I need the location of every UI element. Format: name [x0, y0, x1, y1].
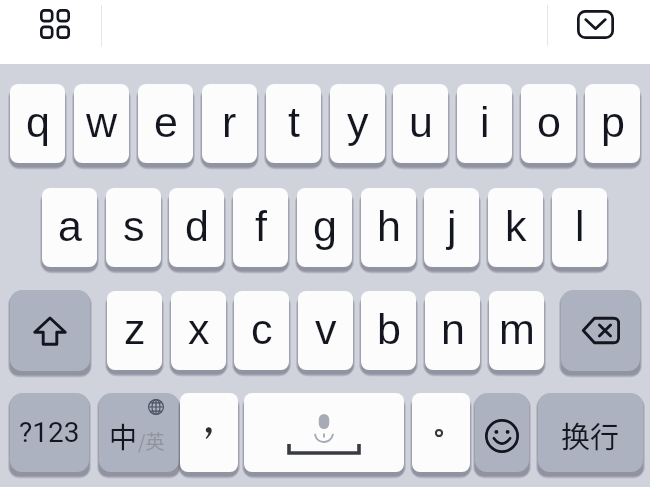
- staticText: q: [26, 98, 50, 146]
- staticText: o: [537, 98, 561, 146]
- button[interactable]: Shift: [10, 290, 90, 371]
- button[interactable]: Emoji: [475, 393, 529, 472]
- staticText: w: [86, 98, 118, 146]
- button[interactable]: q: [10, 84, 65, 163]
- staticText: v: [315, 305, 337, 353]
- button[interactable]: n: [425, 291, 480, 370]
- button[interactable]: Hide keyboard: [566, 0, 624, 48]
- button[interactable]: g: [297, 188, 352, 267]
- button[interactable]: y: [330, 84, 385, 163]
- button[interactable]: a: [42, 188, 97, 267]
- staticText: j: [447, 202, 457, 250]
- button[interactable]: Backspace: [561, 290, 640, 371]
- staticText: b: [377, 305, 401, 353]
- button[interactable]: p: [585, 84, 640, 163]
- button[interactable]: Comma: [180, 393, 238, 472]
- staticText: c: [251, 305, 273, 353]
- button[interactable]: r: [202, 84, 257, 163]
- button[interactable]: Keyboard apps: [22, 0, 88, 48]
- staticText: k: [505, 202, 527, 250]
- button[interactable]: u: [393, 84, 448, 163]
- staticText: u: [409, 98, 433, 146]
- staticText: h: [377, 202, 401, 250]
- button[interactable]: b: [361, 291, 416, 370]
- staticText: x: [188, 305, 210, 353]
- button[interactable]: s: [106, 188, 161, 267]
- button[interactable]: e: [138, 84, 193, 163]
- button[interactable]: Switch language: [99, 393, 179, 472]
- button[interactable]: t: [266, 84, 321, 163]
- staticText: r: [222, 98, 237, 146]
- staticText: y: [347, 98, 369, 146]
- button[interactable]: x: [171, 291, 226, 370]
- button[interactable]: k: [488, 188, 543, 267]
- button[interactable]: Space: [244, 393, 404, 472]
- staticText: t: [288, 98, 300, 146]
- staticText: 换行: [561, 414, 620, 456]
- button[interactable]: o: [521, 84, 576, 163]
- staticText: z: [124, 305, 146, 353]
- staticText: l: [575, 202, 585, 250]
- button[interactable]: Period: [412, 393, 470, 472]
- button[interactable]: w: [74, 84, 129, 163]
- staticText: m: [499, 305, 535, 353]
- staticText: s: [123, 202, 145, 250]
- button[interactable]: Symbols: [10, 393, 89, 472]
- staticText: ?123: [19, 416, 80, 449]
- button[interactable]: i: [457, 84, 512, 163]
- staticText: i: [480, 98, 490, 146]
- button[interactable]: v: [298, 291, 353, 370]
- staticText: p: [601, 98, 625, 146]
- staticText: f: [255, 202, 267, 250]
- button[interactable]: l: [552, 188, 607, 267]
- staticText: e: [154, 98, 178, 146]
- button[interactable]: c: [234, 291, 289, 370]
- staticText: g: [313, 202, 337, 250]
- staticText: 中: [109, 416, 138, 457]
- button[interactable]: h: [361, 188, 416, 267]
- staticText: /英: [138, 427, 165, 455]
- button[interactable]: f: [233, 188, 288, 267]
- button[interactable]: Enter: [538, 393, 643, 472]
- button[interactable]: z: [107, 291, 162, 370]
- button[interactable]: d: [169, 188, 224, 267]
- staticText: d: [185, 202, 209, 250]
- button[interactable]: j: [424, 188, 479, 267]
- staticText: n: [441, 305, 465, 353]
- staticText: a: [58, 202, 82, 250]
- button[interactable]: m: [489, 291, 544, 370]
